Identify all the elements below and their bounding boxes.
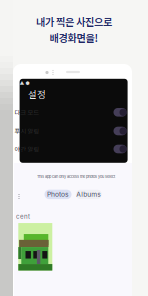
button[interactable]: Photos xyxy=(44,190,71,199)
staticText: 배경화면을! xyxy=(49,30,98,45)
staticText: 내가 찍은 사진으로 xyxy=(36,14,112,29)
button[interactable]: Albums xyxy=(76,190,102,199)
staticText: 푸시 알림 xyxy=(14,127,39,135)
staticText: 설정 xyxy=(28,87,46,101)
staticText: ▲ ⬢ xyxy=(19,80,29,86)
button[interactable]: More options xyxy=(15,191,22,201)
staticText: Albums xyxy=(76,190,101,198)
staticText: This app can only access the photos you … xyxy=(37,174,115,179)
staticText: 다크 모드 xyxy=(14,108,39,117)
staticText: Photos xyxy=(47,190,69,198)
staticText: cent xyxy=(16,213,30,220)
staticText: 야간 알림 xyxy=(14,145,39,153)
